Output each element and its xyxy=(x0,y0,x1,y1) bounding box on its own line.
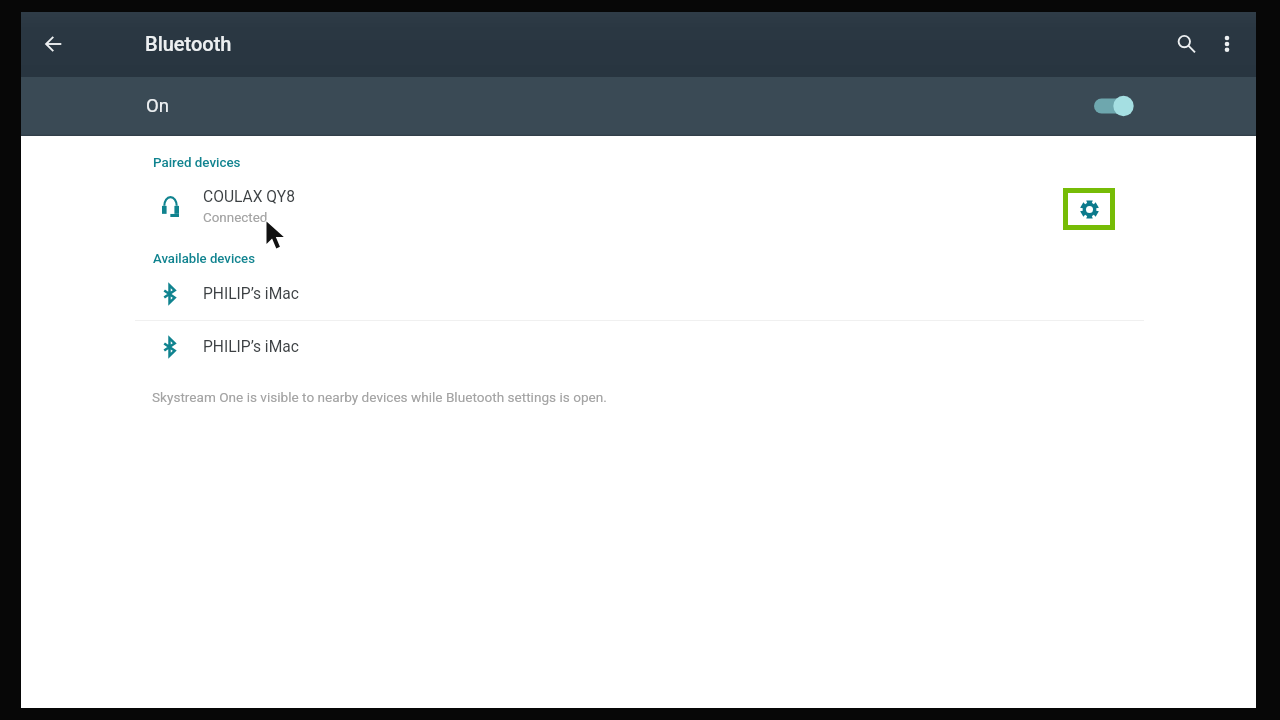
staticText: COULAX QY8 xyxy=(203,188,295,206)
staticText: Paired devices xyxy=(153,155,241,171)
staticText: On xyxy=(146,95,169,117)
button[interactable]: More options xyxy=(1203,20,1251,68)
staticText: PHILIP’s iMac xyxy=(203,285,299,303)
button[interactable]: On xyxy=(21,77,1256,136)
staticText: Bluetooth xyxy=(145,32,232,55)
button[interactable]: PHILIP’s iMac xyxy=(21,272,1256,325)
button[interactable]: COULAX QY8 xyxy=(21,178,1256,236)
button[interactable]: PHILIP’s iMac xyxy=(21,325,1256,378)
staticText: Skystream One is visible to nearby devic… xyxy=(152,389,607,405)
button[interactable]: Device settings xyxy=(1068,193,1110,225)
staticText: Connected xyxy=(203,210,268,226)
staticText: PHILIP’s iMac xyxy=(203,338,299,356)
button[interactable]: Search xyxy=(1162,20,1210,68)
button[interactable]: Back xyxy=(29,20,77,68)
staticText: Available devices xyxy=(153,251,255,266)
